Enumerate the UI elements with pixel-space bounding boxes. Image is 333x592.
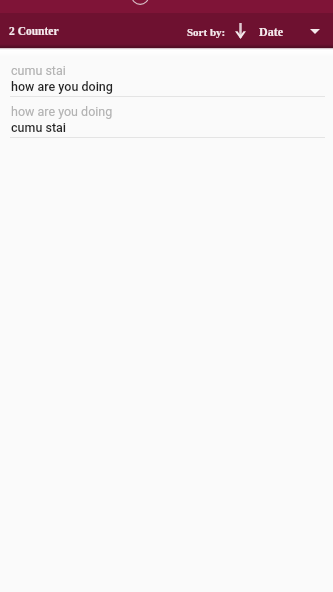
button[interactable]: cumu stai (0, 56, 333, 97)
staticText: how are you doing (11, 79, 113, 94)
staticText: 2 Counter (9, 25, 59, 38)
staticText: cumu stai (11, 120, 67, 135)
button[interactable]: Sort direction ascending (229, 17, 252, 44)
staticText: how are you doing (11, 104, 113, 119)
staticText: Date (259, 25, 283, 38)
staticText: Sort by: (187, 26, 226, 38)
button[interactable]: how are you doing (0, 97, 333, 138)
button[interactable]: Date (259, 13, 320, 48)
button[interactable]: 2 Counter (9, 13, 59, 48)
staticText: cumu stai (11, 63, 66, 78)
